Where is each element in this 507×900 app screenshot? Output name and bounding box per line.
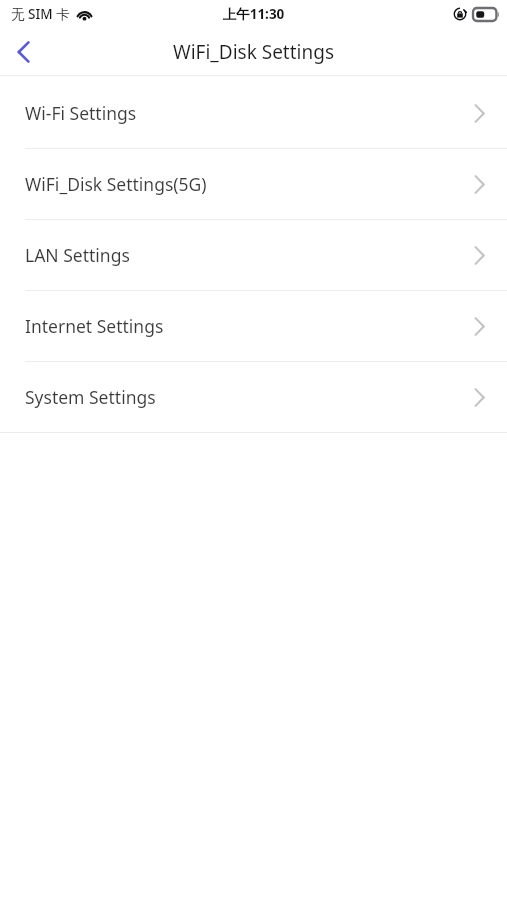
button[interactable]: Internet Settings bbox=[0, 291, 507, 361]
staticText: 无 SIM 卡 bbox=[11, 5, 70, 23]
staticText: Internet Settings bbox=[25, 314, 474, 338]
staticText: 上午11:30 bbox=[0, 5, 507, 23]
staticText: WiFi_Disk Settings bbox=[0, 39, 507, 65]
button[interactable]: WiFi_Disk Settings(5G) bbox=[0, 149, 507, 219]
button[interactable]: System Settings bbox=[0, 362, 507, 432]
button[interactable]: Back bbox=[0, 28, 46, 75]
staticText: Wi-Fi Settings bbox=[25, 101, 474, 125]
staticText: LAN Settings bbox=[25, 243, 474, 267]
staticText: WiFi_Disk Settings(5G) bbox=[25, 172, 474, 196]
staticText: System Settings bbox=[25, 385, 474, 409]
button[interactable]: Wi-Fi Settings bbox=[0, 78, 507, 148]
button[interactable]: LAN Settings bbox=[0, 220, 507, 290]
